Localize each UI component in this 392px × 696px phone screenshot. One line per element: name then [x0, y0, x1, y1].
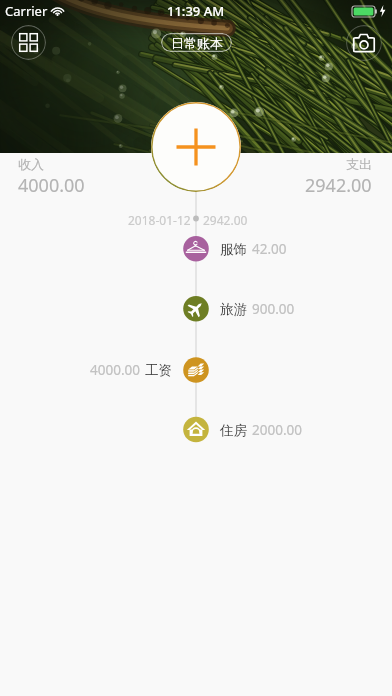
button[interactable]: 旅游 [220, 299, 295, 319]
button[interactable]: 日常账本 [161, 33, 232, 52]
staticText: 900.00 [252, 300, 295, 318]
button[interactable]: 服饰 [220, 239, 287, 259]
button[interactable]: Add record [151, 102, 241, 192]
staticText: 2942.00 [203, 212, 248, 228]
staticText: 2018-01-12 [128, 212, 191, 228]
staticText: 2942.00 [305, 173, 372, 198]
staticText: 旅游 [220, 301, 247, 318]
button[interactable]: Camera [346, 25, 382, 61]
staticText: 42.00 [252, 240, 287, 258]
staticText: 4000.00 [18, 173, 85, 198]
staticText: 日常账本 [171, 35, 223, 51]
staticText: Carrier [5, 2, 48, 20]
staticText: 服饰 [220, 241, 247, 258]
staticText: 支出 [346, 156, 372, 172]
staticText: 2000.00 [252, 421, 302, 439]
staticText: 住房 [220, 422, 247, 439]
button[interactable]: Categories [11, 25, 46, 60]
button[interactable]: 住房 [220, 420, 302, 440]
staticText: 4000.00 [90, 361, 140, 379]
button[interactable]: 4000.00 [0, 360, 172, 380]
staticText: 收入 [18, 156, 44, 172]
staticText: 工资 [145, 362, 172, 379]
staticText: 11:39 AM [167, 2, 225, 20]
